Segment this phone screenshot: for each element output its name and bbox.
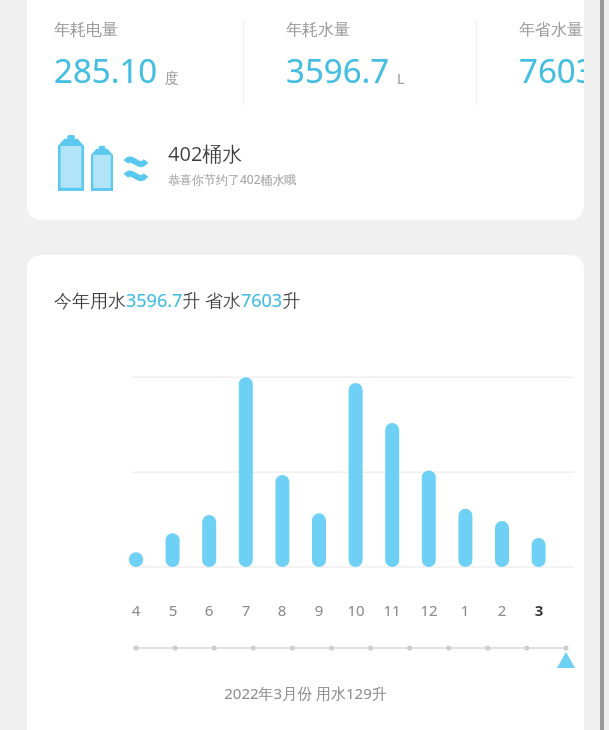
staticText: 今年用水3596.7升 省水7603升 <box>54 288 301 313</box>
staticText: 年耗电量 <box>54 20 118 40</box>
button[interactable]: 2 <box>488 600 516 620</box>
staticText: 402桶水 <box>168 140 243 167</box>
button[interactable]: 6 <box>195 600 223 620</box>
button[interactable]: 9 <box>305 600 333 620</box>
staticText: 2 <box>488 600 516 620</box>
staticText: 285.10 <box>54 48 158 93</box>
staticText: 年耗水量 <box>286 20 350 40</box>
button[interactable]: 4 <box>122 600 150 620</box>
staticText: 7 <box>232 600 260 620</box>
button[interactable]: 8 <box>268 600 296 620</box>
button[interactable]: 10 <box>342 600 370 620</box>
button[interactable]: 3 <box>525 600 553 620</box>
other: Water barrels <box>54 132 156 194</box>
button[interactable] <box>27 640 584 674</box>
button[interactable]: 7 <box>232 600 260 620</box>
staticText: 4 <box>122 600 150 620</box>
button[interactable]: 11 <box>378 600 406 620</box>
button[interactable]: 今年用水3596.7升 省水7603升 <box>27 255 584 730</box>
button[interactable]: 12 <box>415 600 443 620</box>
button[interactable]: Water barrels <box>54 132 297 194</box>
button[interactable]: 1 <box>451 600 479 620</box>
staticText: 2022年3月份 用水129升 <box>27 683 584 703</box>
staticText: 5 <box>159 600 187 620</box>
staticText: 12 <box>415 600 443 620</box>
staticText: 9 <box>305 600 333 620</box>
staticText: 年省水量 <box>519 20 583 40</box>
staticText: 6 <box>195 600 223 620</box>
staticText: 恭喜你节约了402桶水哦 <box>168 171 297 187</box>
button[interactable]: 年耗电量 <box>27 0 584 220</box>
staticText: 3596.7 <box>286 48 390 93</box>
staticText: 8 <box>268 600 296 620</box>
staticText: 度 <box>165 70 179 88</box>
staticText: 11 <box>378 600 406 620</box>
staticText: L <box>397 69 405 88</box>
staticText: 10 <box>342 600 370 620</box>
staticText: 1 <box>451 600 479 620</box>
button[interactable]: 5 <box>159 600 187 620</box>
staticText: 7603 <box>519 48 584 93</box>
staticText: 3 <box>525 600 553 620</box>
